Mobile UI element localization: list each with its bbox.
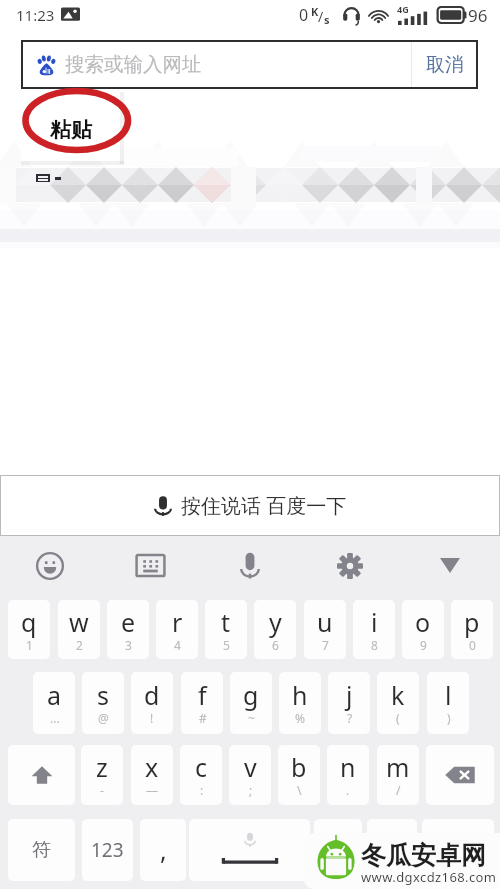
- staticText: %: [295, 710, 305, 726]
- staticText: o: [415, 605, 431, 639]
- staticText: n: [340, 750, 356, 784]
- button[interactable]: a: [33, 672, 75, 734]
- staticText: -: [100, 782, 104, 798]
- staticText: ,: [160, 833, 167, 867]
- button[interactable]: Settings: [300, 536, 400, 595]
- button[interactable]: 取消: [412, 40, 478, 89]
- button[interactable]: [422, 819, 494, 881]
- staticText: .: [346, 782, 350, 798]
- button[interactable]: Space: [189, 819, 310, 881]
- button[interactable]: ,: [140, 819, 186, 881]
- staticText: v: [244, 750, 257, 784]
- staticText: y: [269, 605, 282, 639]
- other: Shift: [29, 762, 55, 788]
- button[interactable]: Voice input: [200, 536, 300, 595]
- staticText: @: [98, 710, 109, 726]
- staticText: t: [221, 605, 231, 639]
- button[interactable]: h: [279, 672, 321, 734]
- staticText: 0: [469, 637, 476, 653]
- button[interactable]: Keyboard layout: [100, 536, 200, 595]
- button[interactable]: s: [82, 672, 124, 734]
- staticText: ...: [50, 710, 60, 726]
- staticText: —: [146, 782, 159, 798]
- staticText: 96: [468, 4, 488, 27]
- button[interactable]: 按住说话 百度一下: [0, 475, 500, 536]
- staticText: h: [292, 678, 308, 712]
- staticText: 2: [76, 637, 83, 653]
- staticText: /: [396, 782, 401, 798]
- staticText: 冬瓜安卓网: [361, 840, 486, 871]
- staticText: s: [324, 12, 330, 27]
- other: Space: [215, 832, 285, 868]
- staticText: 4: [174, 637, 181, 653]
- button[interactable]: Emoji: [0, 536, 100, 595]
- staticText: 取消: [426, 53, 464, 77]
- staticText: 粘贴: [50, 117, 92, 143]
- staticText: !: [150, 710, 154, 726]
- button[interactable]: 粘贴: [21, 89, 120, 161]
- other: Backspace: [444, 763, 476, 787]
- staticText: 7: [322, 637, 329, 653]
- button[interactable]: g: [230, 672, 272, 734]
- button[interactable]: 123: [82, 819, 133, 881]
- staticText: a: [47, 678, 62, 712]
- button[interactable]: j: [328, 672, 370, 734]
- staticText: 123: [91, 837, 124, 863]
- button[interactable]: t: [205, 600, 247, 659]
- button[interactable]: e: [107, 600, 149, 659]
- staticText: c: [195, 750, 208, 784]
- button[interactable]: i: [353, 600, 395, 659]
- staticText: q: [21, 605, 37, 639]
- staticText: r: [172, 605, 183, 639]
- staticText: l: [445, 678, 452, 712]
- staticText: 6: [272, 637, 279, 653]
- button[interactable]: f: [181, 672, 223, 734]
- staticText: u: [317, 605, 333, 639]
- staticText: f: [198, 678, 207, 712]
- button[interactable]: v: [229, 745, 271, 805]
- staticText: 符: [32, 838, 51, 862]
- staticText: ;: [249, 782, 253, 798]
- staticText: 搜索或输入网址: [65, 52, 202, 77]
- staticText: ~: [248, 710, 255, 726]
- button[interactable]: Shift: [8, 745, 75, 805]
- button[interactable]: y: [254, 600, 296, 659]
- button[interactable]: c: [180, 745, 222, 805]
- staticText: 9: [420, 637, 427, 653]
- button[interactable]: d: [131, 672, 173, 734]
- staticText: z: [96, 750, 108, 784]
- staticText: 按住说话 百度一下: [181, 492, 347, 519]
- button[interactable]: l: [427, 672, 469, 734]
- button[interactable]: [367, 819, 417, 881]
- staticText: w: [69, 605, 89, 639]
- button[interactable]: [314, 819, 362, 881]
- button[interactable]: Hide keyboard: [400, 536, 500, 595]
- staticText: b: [291, 750, 307, 784]
- staticText: K: [311, 4, 319, 19]
- button[interactable]: n: [327, 745, 369, 805]
- staticText: 8: [371, 637, 378, 653]
- staticText: ): [447, 710, 451, 726]
- button[interactable]: o: [402, 600, 444, 659]
- staticText: i: [371, 605, 378, 639]
- button[interactable]: b: [278, 745, 320, 805]
- button[interactable]: w: [58, 600, 100, 659]
- button[interactable]: 符: [8, 819, 75, 881]
- button[interactable]: q: [8, 600, 50, 659]
- staticText: 0: [299, 4, 309, 26]
- button[interactable]: z: [81, 745, 123, 805]
- staticText: m: [386, 750, 410, 784]
- button[interactable]: x: [131, 745, 173, 805]
- staticText: /: [318, 7, 324, 26]
- button[interactable]: u: [304, 600, 346, 659]
- staticText: j: [346, 678, 353, 712]
- button[interactable]: r: [156, 600, 198, 659]
- button[interactable]: p: [451, 600, 493, 659]
- staticText: www.dgxcdz168.com: [361, 868, 497, 886]
- staticText: \: [297, 782, 302, 798]
- button[interactable]: k: [377, 672, 419, 734]
- button[interactable]: Backspace: [426, 745, 494, 805]
- staticText: 1: [26, 637, 33, 653]
- button[interactable]: m: [377, 745, 419, 805]
- staticText: #: [199, 710, 207, 726]
